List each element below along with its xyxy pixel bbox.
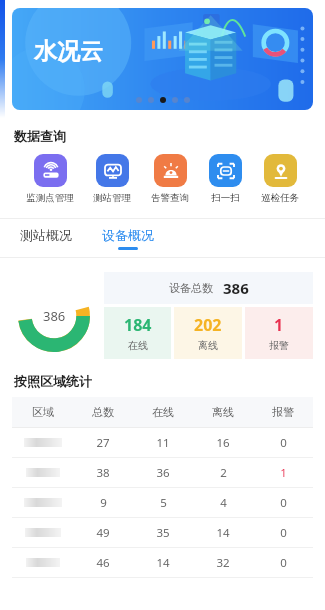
staticText: 测站管理 bbox=[93, 192, 131, 204]
button[interactable]: 202 bbox=[174, 307, 242, 359]
staticText: 区域 bbox=[32, 405, 54, 419]
button[interactable]: 扫一扫 bbox=[207, 152, 244, 206]
button[interactable]: 49 bbox=[12, 518, 313, 547]
staticText: 38 bbox=[96, 465, 110, 481]
button[interactable]: 监测点管理 bbox=[24, 152, 76, 206]
button[interactable]: 告警查询 bbox=[149, 152, 191, 206]
staticText: 386 bbox=[223, 278, 249, 298]
button[interactable]: 386 bbox=[12, 274, 96, 358]
staticText: 9 bbox=[100, 495, 107, 511]
staticText: 386 bbox=[43, 307, 66, 325]
button[interactable]: 设备总数 bbox=[104, 272, 313, 304]
button[interactable]: 1 bbox=[245, 307, 313, 359]
staticText: 扫一扫 bbox=[211, 192, 240, 204]
staticText: 14 bbox=[156, 555, 170, 571]
staticText: 水况云 bbox=[34, 37, 103, 66]
staticText: 按照区域统计 bbox=[14, 373, 92, 389]
staticText: 离线 bbox=[198, 339, 218, 352]
staticText: 16 bbox=[216, 435, 230, 451]
staticText: 0 bbox=[280, 435, 287, 451]
button[interactable]: 测站概况 bbox=[14, 223, 78, 254]
button[interactable]: 水况云 bbox=[12, 8, 313, 110]
button[interactable]: 27 bbox=[12, 428, 313, 457]
button[interactable]: 9 bbox=[12, 488, 313, 517]
staticText: 2 bbox=[220, 465, 227, 481]
button[interactable]: 测站管理 bbox=[91, 152, 133, 206]
staticText: 报警 bbox=[269, 339, 289, 352]
button[interactable]: 设备概况 bbox=[96, 223, 160, 254]
staticText: 监测点管理 bbox=[26, 192, 74, 204]
staticText: 报警 bbox=[272, 405, 294, 419]
staticText: 184 bbox=[124, 314, 152, 336]
staticText: 在线 bbox=[152, 405, 174, 419]
staticText: 0 bbox=[280, 525, 287, 541]
staticText: 5 bbox=[160, 495, 167, 511]
button[interactable]: 184 bbox=[104, 307, 171, 359]
button[interactable]: 46 bbox=[12, 548, 313, 577]
staticText: 巡检任务 bbox=[261, 192, 299, 204]
staticText: 1 bbox=[280, 465, 287, 481]
staticText: 32 bbox=[216, 555, 230, 571]
staticText: 0 bbox=[280, 555, 287, 571]
button[interactable]: 巡检任务 bbox=[259, 152, 301, 206]
button[interactable]: 38 bbox=[12, 458, 313, 487]
staticText: 数据查询 bbox=[14, 128, 66, 144]
staticText: 202 bbox=[194, 314, 222, 336]
staticText: 离线 bbox=[212, 405, 234, 419]
staticText: 4 bbox=[220, 495, 227, 511]
staticText: 27 bbox=[96, 435, 110, 451]
staticText: 总数 bbox=[92, 405, 114, 419]
staticText: 设备概况 bbox=[102, 227, 154, 243]
staticText: 设备总数 bbox=[169, 281, 213, 295]
staticText: 测站概况 bbox=[20, 227, 72, 243]
staticText: 49 bbox=[96, 525, 110, 541]
staticText: 46 bbox=[96, 555, 110, 571]
staticText: 在线 bbox=[128, 339, 148, 352]
staticText: 0 bbox=[280, 495, 287, 511]
staticText: 1 bbox=[274, 314, 284, 336]
staticText: 35 bbox=[156, 525, 170, 541]
staticText: 11 bbox=[156, 435, 170, 451]
staticText: 告警查询 bbox=[151, 192, 189, 204]
staticText: 36 bbox=[156, 465, 170, 481]
staticText: 14 bbox=[216, 525, 230, 541]
